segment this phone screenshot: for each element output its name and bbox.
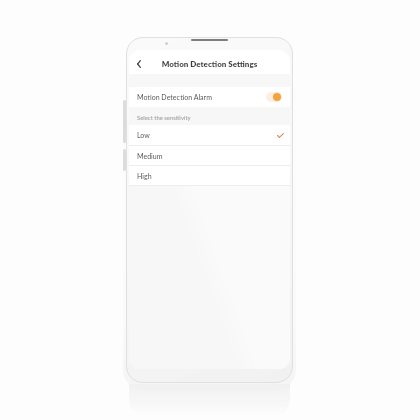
button[interactable]: High [129,166,290,185]
staticText: Motion Detection Settings [129,59,290,69]
staticText: Select the sensitivity [137,114,191,121]
button[interactable]: Motion Detection Alarm [129,87,290,107]
button[interactable]: Motion detection alarm toggle [266,92,282,102]
staticText: Low [137,131,150,139]
staticText: Medium [137,152,163,160]
button[interactable]: Low [129,125,290,145]
button[interactable]: Medium [129,146,290,165]
staticText: Motion Detection Alarm [137,93,212,101]
button[interactable]: Back [130,50,148,74]
staticText: High [137,172,152,180]
